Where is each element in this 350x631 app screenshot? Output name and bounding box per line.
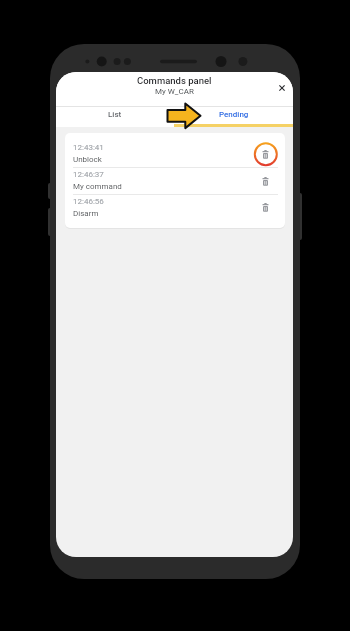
staticText: Pending [219,110,249,119]
button[interactable]: List [56,107,174,127]
staticText: My W_CAR [155,87,194,96]
staticText: Commands panel [137,75,212,86]
button[interactable]: 12:46:37 [65,168,285,194]
staticText: 12:43:41 [73,143,104,152]
button[interactable] [275,81,289,95]
button[interactable]: 12:43:41 [65,141,285,167]
staticText: Disarm [73,209,99,218]
button[interactable]: 12:46:56 [65,195,285,220]
staticText: List [108,110,122,119]
staticText: Unblock [73,155,102,164]
staticText: 12:46:37 [73,170,104,179]
staticText: 12:46:56 [73,197,104,206]
button[interactable]: Pending [174,107,293,127]
staticText: My command [73,182,122,191]
